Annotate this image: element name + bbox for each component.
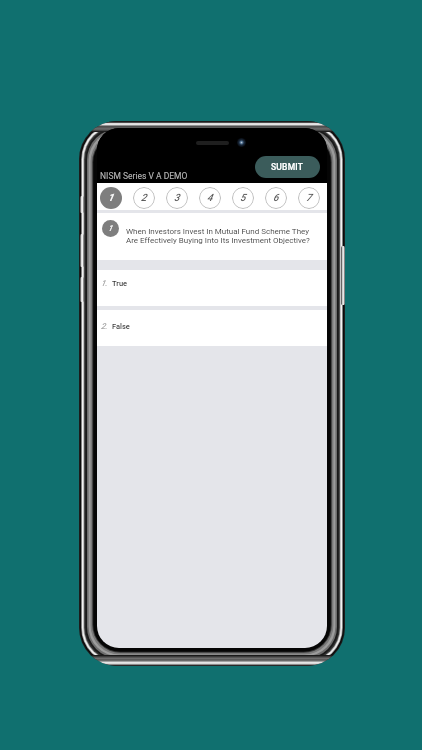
staticText: SUBMIT	[271, 162, 304, 172]
staticText: 1	[108, 224, 113, 233]
staticText: 5	[240, 192, 246, 204]
staticText: True	[112, 279, 128, 288]
button[interactable]: 1	[100, 187, 122, 209]
button[interactable]: 2	[133, 187, 155, 209]
staticText: 2.	[101, 322, 108, 331]
staticText: 2	[141, 192, 147, 204]
staticText: 3	[174, 192, 180, 204]
button[interactable]: 7	[298, 187, 320, 209]
staticText: When Investors Invest In Mutual Fund Sch…	[126, 227, 316, 245]
button[interactable]: 6	[265, 187, 287, 209]
staticText: 1	[108, 192, 114, 204]
button[interactable]: 5	[232, 187, 254, 209]
button[interactable]: 2.	[97, 310, 327, 346]
button[interactable]: SUBMIT	[255, 156, 320, 178]
button[interactable]: 1.	[97, 270, 327, 306]
staticText: False	[112, 322, 130, 331]
staticText: 1.	[101, 279, 108, 288]
button[interactable]: 4	[199, 187, 221, 209]
staticText: 7	[306, 192, 312, 204]
staticText: 6	[273, 192, 279, 204]
staticText: NISM Series V A DEMO	[100, 171, 188, 181]
staticText: 4	[207, 192, 213, 204]
button[interactable]: 3	[166, 187, 188, 209]
